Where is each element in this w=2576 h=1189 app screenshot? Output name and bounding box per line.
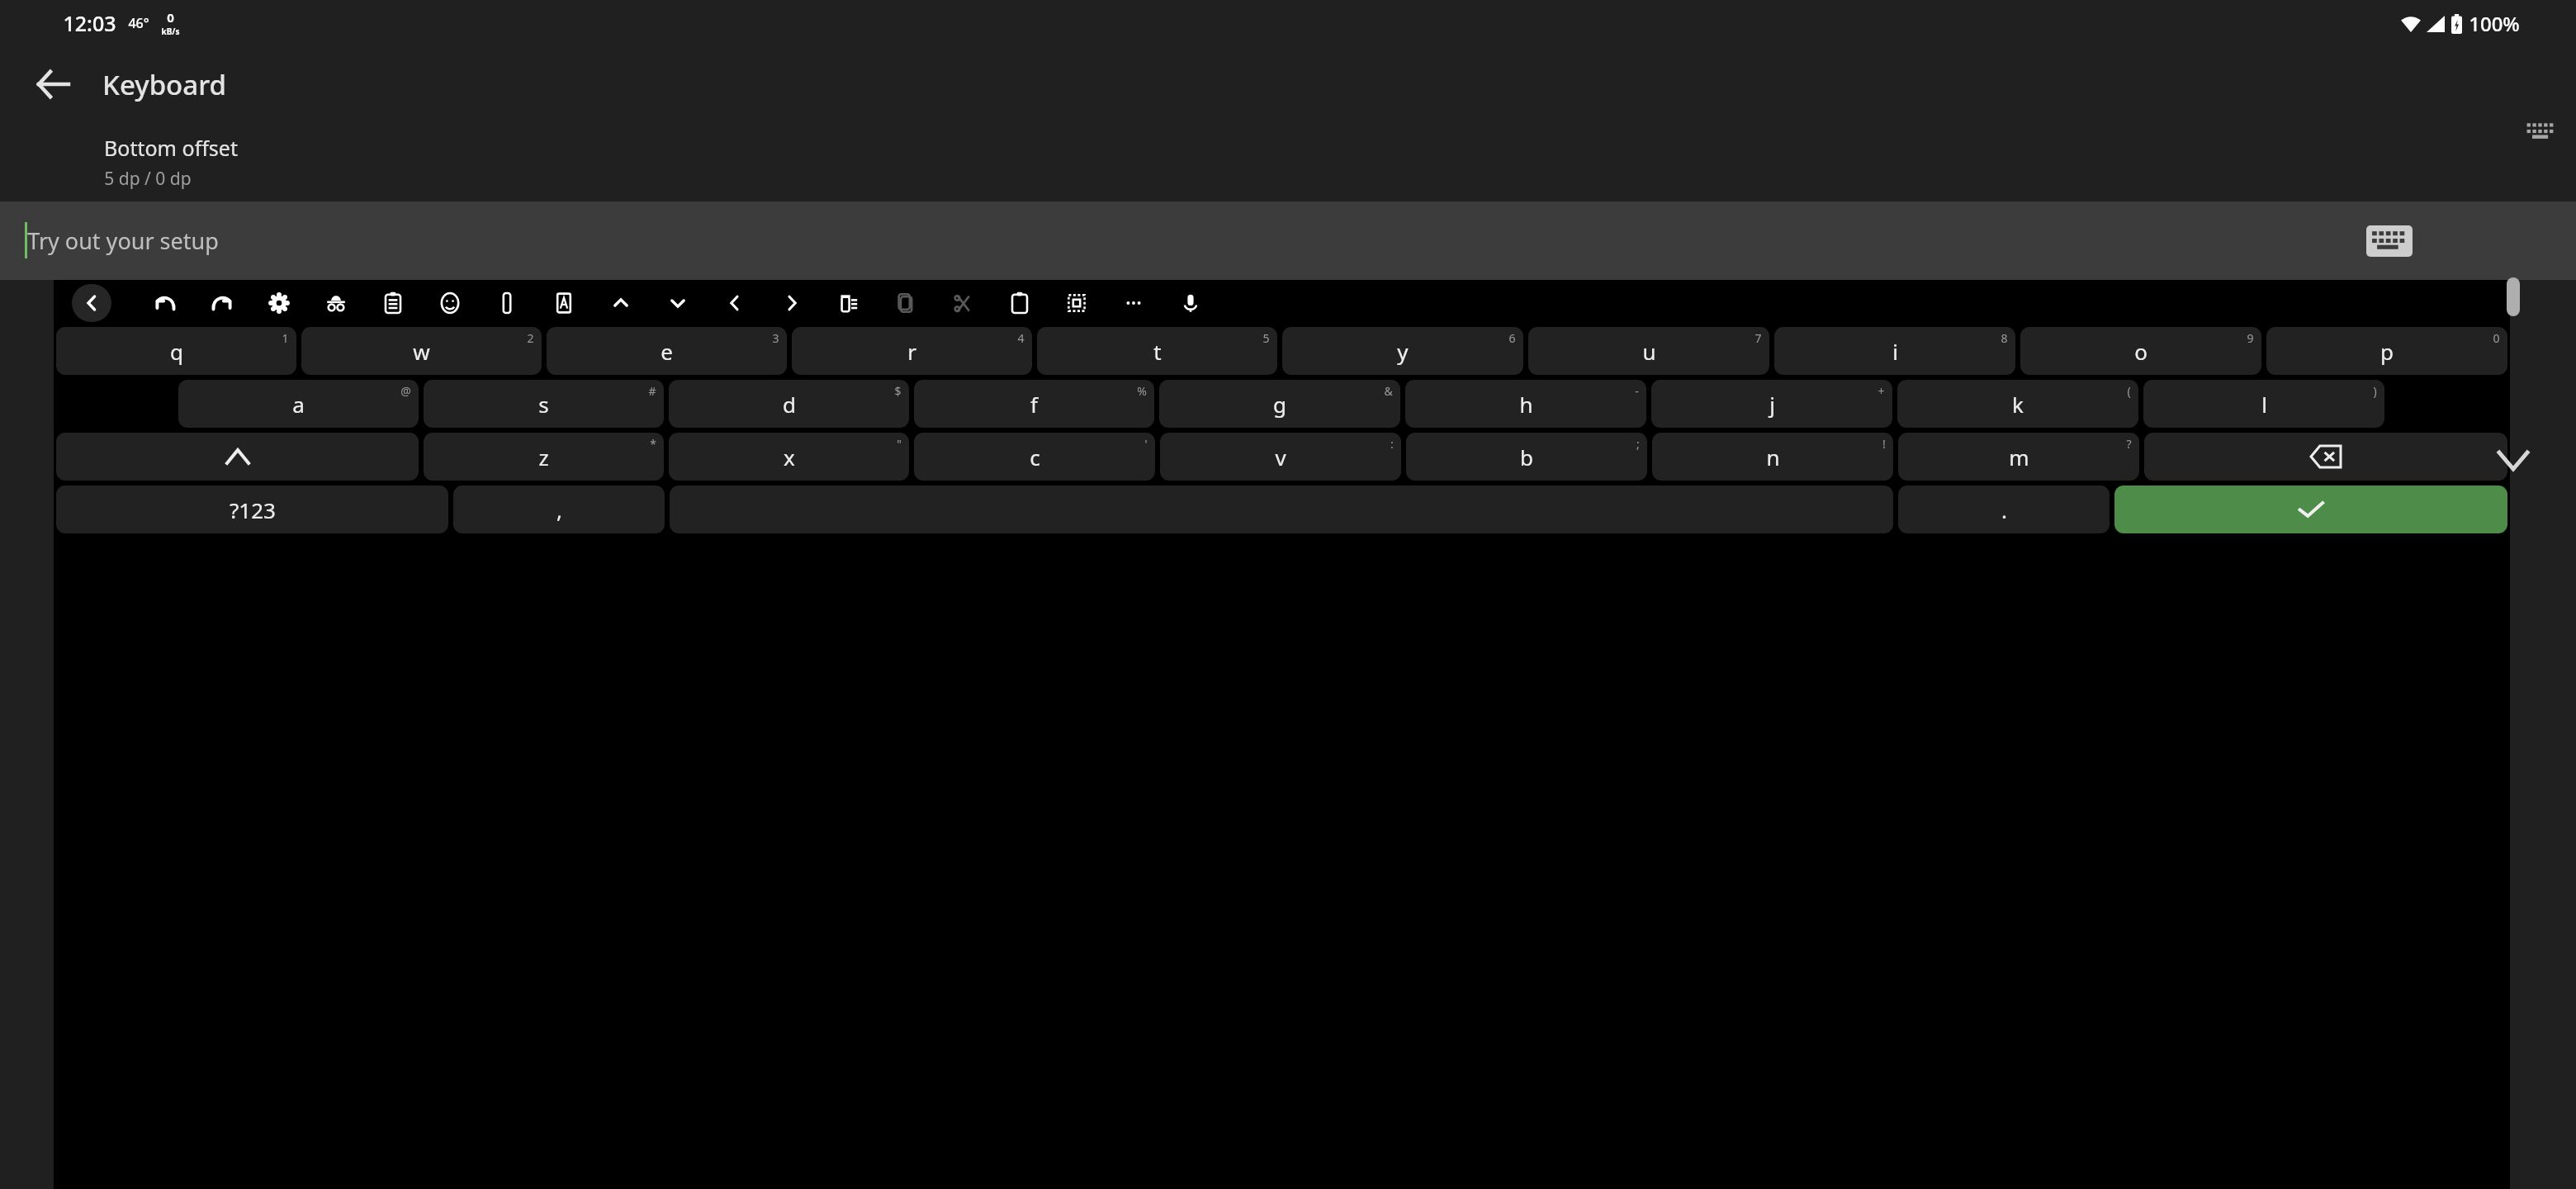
- staticText: 4: [1017, 330, 1025, 346]
- button[interactable]: Cut: [934, 282, 991, 324]
- button[interactable]: Try out your setup: [0, 201, 2576, 280]
- button[interactable]: Up: [592, 282, 649, 324]
- button[interactable]: Delete: [820, 282, 877, 324]
- button[interactable]: s: [424, 380, 664, 428]
- staticText: g: [1273, 390, 1286, 419]
- button[interactable]: Voice: [1162, 282, 1219, 324]
- button[interactable]: One hand: [478, 282, 535, 324]
- button[interactable]: Show keyboard: [2523, 117, 2559, 145]
- staticText: 12:03: [63, 9, 116, 37]
- staticText: ): [2373, 383, 2377, 399]
- button[interactable]: b: [1406, 433, 1647, 481]
- staticText: *: [650, 436, 656, 452]
- button[interactable]: Enter: [2114, 486, 2507, 533]
- button[interactable]: r: [792, 327, 1032, 375]
- button[interactable]: e: [547, 327, 787, 375]
- button[interactable]: Undo: [136, 282, 193, 324]
- staticText: 7: [1754, 330, 1762, 346]
- button[interactable]: Incognito: [307, 282, 364, 324]
- staticText: f: [1030, 390, 1038, 419]
- button[interactable]: Down: [649, 282, 706, 324]
- staticText: kB/s: [161, 26, 180, 37]
- button[interactable]: More: [1105, 282, 1162, 324]
- button[interactable]: i: [1774, 327, 2015, 375]
- staticText: (: [2127, 383, 2131, 399]
- staticText: b: [1520, 443, 1533, 471]
- staticText: +: [1878, 383, 1885, 399]
- button[interactable]: Copy: [877, 282, 934, 324]
- button[interactable]: Redo: [193, 282, 250, 324]
- staticText: !: [1882, 436, 1886, 452]
- button[interactable]: o: [2020, 327, 2261, 375]
- staticText: :: [1390, 436, 1394, 452]
- staticText: q: [170, 337, 183, 366]
- staticText: Keyboard: [102, 66, 226, 103]
- button[interactable]: h: [1405, 380, 1646, 428]
- staticText: ': [1144, 436, 1148, 452]
- button[interactable]: a: [178, 380, 419, 428]
- button[interactable]: g: [1159, 380, 1400, 428]
- staticText: h: [1519, 390, 1533, 419]
- button[interactable]: Emoji: [421, 282, 478, 324]
- staticText: 5 dp / 0 dp: [104, 167, 192, 191]
- staticText: Try out your setup: [27, 225, 219, 256]
- staticText: d: [783, 390, 796, 419]
- staticText: p: [2380, 337, 2394, 366]
- button[interactable]: Clipboard: [364, 282, 421, 324]
- button[interactable]: q: [56, 327, 296, 375]
- button[interactable]: k: [1897, 380, 2138, 428]
- button[interactable]: v: [1160, 433, 1401, 481]
- staticText: 46°: [128, 14, 149, 32]
- staticText: 9: [2247, 330, 2254, 346]
- button[interactable]: x: [669, 433, 909, 481]
- staticText: %: [1137, 383, 1147, 399]
- staticText: w: [413, 337, 430, 366]
- button[interactable]: p: [2266, 327, 2507, 375]
- staticText: #: [648, 383, 656, 399]
- button[interactable]: Collapse: [2488, 438, 2538, 484]
- staticText: $: [894, 383, 902, 399]
- button[interactable]: y: [1282, 327, 1523, 375]
- button[interactable]: ?123: [56, 486, 448, 533]
- staticText: r: [907, 337, 916, 366]
- button[interactable]: n: [1652, 433, 1893, 481]
- staticText: v: [1275, 443, 1286, 471]
- button[interactable]: Backspace: [2144, 433, 2507, 481]
- button[interactable]: Back: [21, 53, 84, 116]
- button[interactable]: Right: [763, 282, 820, 324]
- button[interactable]: t: [1037, 327, 1277, 375]
- button[interactable]: m: [1898, 433, 2139, 481]
- button[interactable]: z: [424, 433, 664, 481]
- button[interactable]: ,: [453, 486, 665, 533]
- button[interactable]: d: [669, 380, 909, 428]
- button[interactable]: Bottom offset: [0, 122, 2576, 201]
- button[interactable]: Settings: [250, 282, 307, 324]
- button[interactable]: Shift: [56, 433, 419, 481]
- button[interactable]: Select all: [1048, 282, 1105, 324]
- staticText: c: [1030, 443, 1040, 471]
- button[interactable]: Keyboard options: [2365, 223, 2414, 259]
- button[interactable]: u: [1528, 327, 1769, 375]
- staticText: 0: [167, 9, 174, 26]
- button[interactable]: f: [914, 380, 1154, 428]
- button[interactable]: Paste: [991, 282, 1048, 324]
- button[interactable]: Text edit: [535, 282, 592, 324]
- staticText: 100%: [2469, 10, 2520, 37]
- button[interactable]: .: [1898, 486, 2110, 533]
- button[interactable]: l: [2143, 380, 2384, 428]
- staticText: @: [400, 383, 411, 399]
- staticText: -: [1635, 383, 1639, 399]
- staticText: ?123: [230, 495, 276, 524]
- button[interactable]: Left: [706, 282, 763, 324]
- button[interactable]: Collapse toolbar: [72, 284, 111, 322]
- staticText: ,: [556, 495, 562, 524]
- button[interactable]: j: [1651, 380, 1892, 428]
- staticText: 3: [772, 330, 779, 346]
- staticText: j: [1769, 390, 1775, 419]
- button[interactable]: w: [301, 327, 542, 375]
- staticText: m: [2009, 443, 2029, 471]
- staticText: k: [2012, 390, 2024, 419]
- button[interactable]: c: [914, 433, 1155, 481]
- staticText: e: [661, 337, 673, 366]
